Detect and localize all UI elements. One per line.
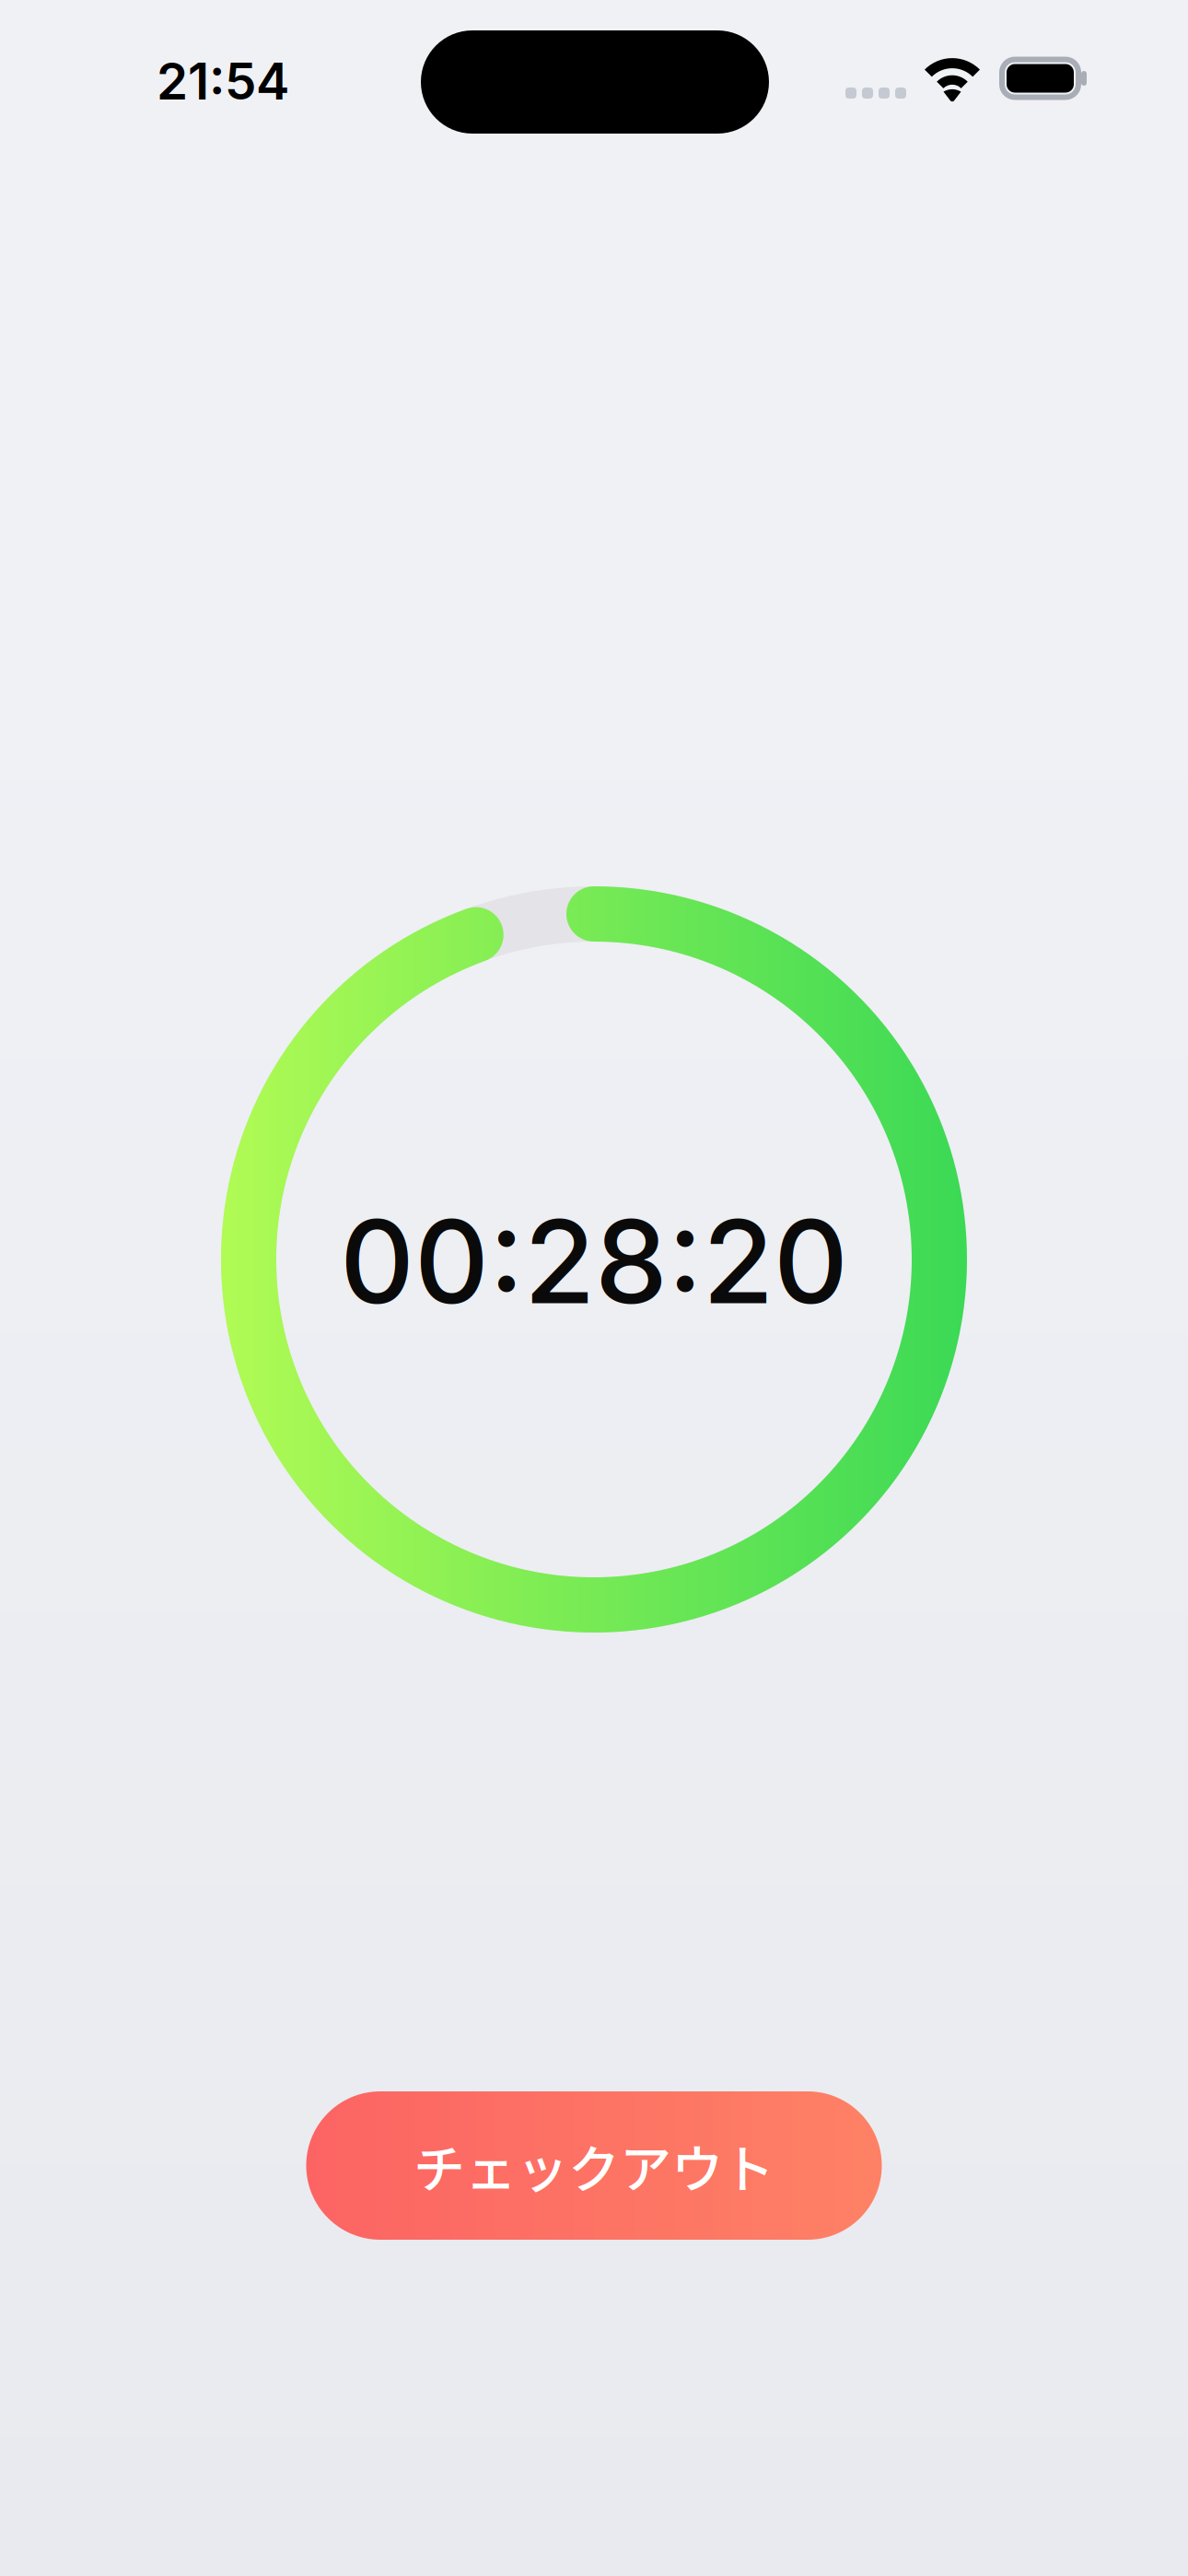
staticText: 21:54	[157, 51, 289, 111]
button[interactable]: チェックアウト	[306, 2091, 882, 2240]
staticText: 00:28:20	[340, 1191, 848, 1331]
staticText: チェックアウト	[413, 2128, 775, 2203]
